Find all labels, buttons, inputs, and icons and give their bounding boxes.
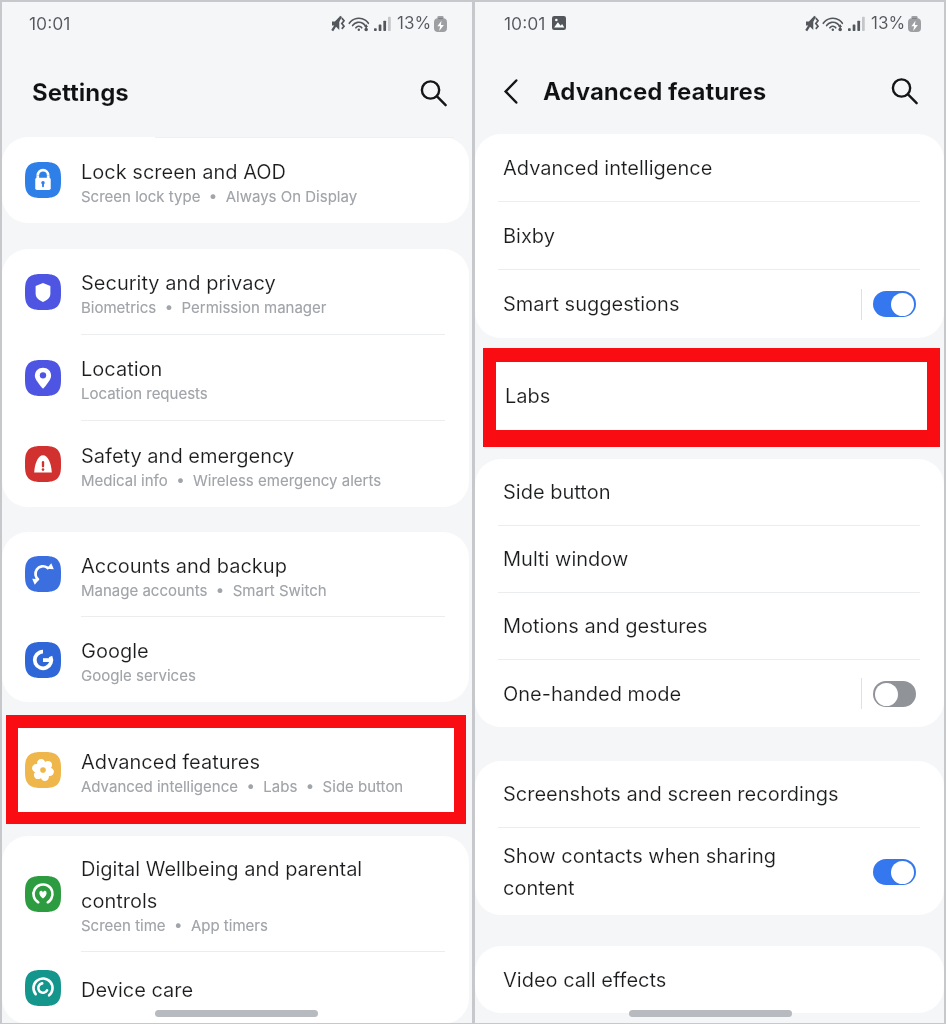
staticText: Google [81, 639, 149, 663]
button[interactable]: Accounts and backup [2, 532, 469, 617]
button[interactable]: Search [411, 71, 455, 115]
staticText: Multi window [503, 547, 629, 571]
staticText: 10:01 [504, 13, 546, 34]
button[interactable]: Digital Wellbeing and parental controls [2, 836, 469, 952]
button[interactable]: Advanced features [18, 728, 454, 812]
button[interactable]: Safety and emergency [2, 421, 469, 507]
button[interactable]: Location [2, 335, 469, 421]
button[interactable]: Advanced intelligence [475, 134, 944, 202]
button[interactable]: Video call effects [475, 946, 944, 1013]
staticText: 13% [871, 13, 906, 34]
staticText: Advanced intelligence • Labs • Side butt… [81, 777, 404, 795]
staticText: Screen lock type • Always On Display [81, 187, 358, 205]
button[interactable]: Back [489, 69, 533, 113]
staticText: Labs [505, 384, 551, 408]
staticText: Advanced intelligence [503, 156, 713, 180]
staticText: Google services [81, 666, 196, 684]
staticText: Lock screen and AOD [81, 160, 287, 184]
button[interactable]: One-handed mode [873, 681, 916, 707]
button[interactable]: Screenshots and screen recordings [475, 761, 944, 828]
staticText: Accounts and backup [81, 554, 287, 578]
button[interactable]: Side button [475, 459, 944, 526]
button[interactable]: One-handed mode [475, 660, 944, 727]
staticText: Side button [503, 480, 611, 504]
staticText: Show contacts when sharing content [503, 844, 783, 900]
staticText: Video call effects [503, 968, 667, 992]
button[interactable]: Bixby [475, 202, 944, 270]
button[interactable]: Security and privacy [2, 249, 469, 335]
staticText: Motions and gestures [503, 614, 708, 638]
staticText: Advanced features [81, 750, 260, 774]
button[interactable]: Search [882, 69, 926, 113]
button[interactable]: Device care [2, 952, 469, 1024]
button[interactable]: Labs [496, 362, 927, 430]
staticText: Screenshots and screen recordings [503, 782, 839, 806]
staticText: One-handed mode [503, 682, 682, 706]
button[interactable]: Show contacts when sharing content [873, 859, 916, 885]
staticText: Smart suggestions [503, 292, 680, 316]
staticText: Security and privacy [81, 271, 276, 295]
staticText: Screen time • App timers [81, 916, 268, 934]
staticText: Settings [32, 78, 129, 107]
button[interactable]: Multi window [475, 526, 944, 593]
button[interactable]: Lock screen and AOD [2, 137, 469, 223]
staticText: Medical info • Wireless emergency alerts [81, 471, 382, 489]
button[interactable]: Motions and gestures [475, 593, 944, 660]
staticText: Biometrics • Permission manager [81, 298, 327, 316]
staticText: Location requests [81, 384, 208, 402]
staticText: Manage accounts • Smart Switch [81, 581, 327, 599]
staticText: Advanced features [543, 77, 767, 106]
staticText: Digital Wellbeing and parental controls [81, 857, 371, 913]
button[interactable]: Google [2, 617, 469, 702]
staticText: Bixby [503, 224, 555, 248]
staticText: Device care [81, 978, 194, 1002]
button[interactable]: Smart suggestions [475, 270, 944, 338]
button[interactable]: Smart suggestions [873, 291, 916, 317]
staticText: 10:01 [29, 13, 71, 34]
staticText: Safety and emergency [81, 444, 295, 468]
staticText: Location [81, 357, 163, 381]
staticText: 13% [397, 13, 432, 34]
button[interactable]: Show contacts when sharing content [475, 828, 944, 915]
